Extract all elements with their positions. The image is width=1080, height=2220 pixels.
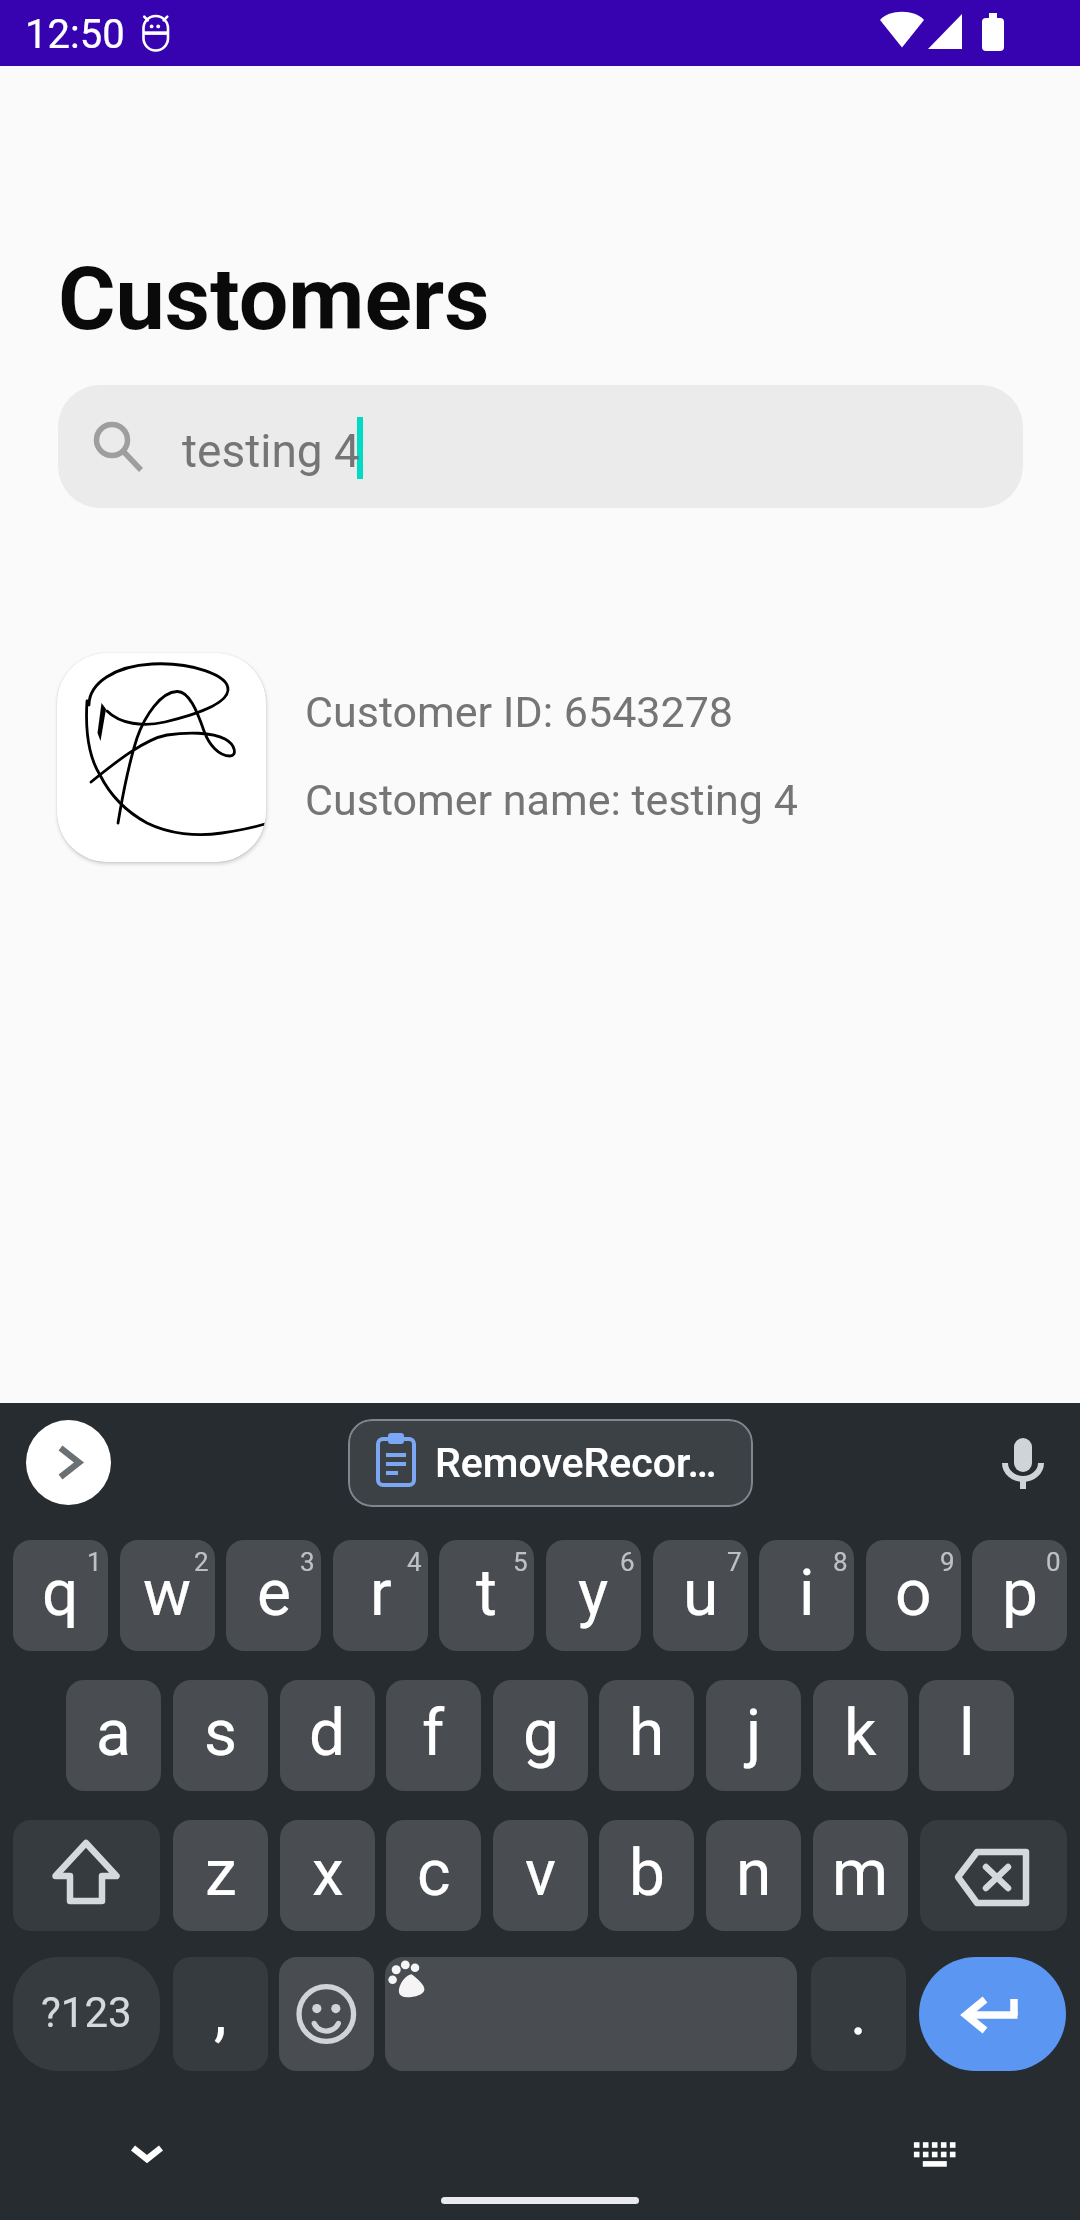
- staticText: 7: [727, 1547, 742, 1577]
- staticText: RemoveRecor…: [435, 1439, 717, 1487]
- button[interactable]: Switch keyboard: [890, 2121, 980, 2201]
- staticText: Customer name: testing 4: [305, 775, 798, 825]
- staticText: ,: [214, 1975, 227, 2050]
- staticText: Customers: [58, 247, 490, 350]
- staticText: testing 4: [182, 424, 360, 478]
- button[interactable]: j: [706, 1680, 801, 1791]
- button[interactable]: a: [66, 1680, 161, 1791]
- button[interactable]: g: [493, 1680, 588, 1791]
- staticText: e: [257, 1556, 291, 1631]
- staticText: 5: [513, 1547, 528, 1577]
- staticText: c: [417, 1836, 451, 1911]
- button[interactable]: b: [599, 1820, 694, 1931]
- staticText: 1: [87, 1547, 102, 1577]
- staticText: f: [422, 1696, 445, 1771]
- button[interactable]: p: [972, 1540, 1067, 1651]
- button[interactable]: m: [813, 1820, 908, 1931]
- button[interactable]: x: [280, 1820, 375, 1931]
- button[interactable]: v: [493, 1820, 588, 1931]
- staticText: y: [578, 1556, 609, 1631]
- button[interactable]: Voice input: [978, 1420, 1068, 1505]
- staticText: n: [736, 1836, 772, 1911]
- staticText: ?123: [41, 1988, 132, 2037]
- staticText: g: [523, 1696, 559, 1771]
- button[interactable]: Shift: [13, 1820, 160, 1931]
- staticText: 3: [300, 1547, 315, 1577]
- button[interactable]: RemoveRecor…: [348, 1419, 753, 1507]
- button[interactable]: ,: [173, 1957, 268, 2071]
- staticText: v: [525, 1836, 556, 1911]
- staticText: k: [844, 1696, 877, 1771]
- button[interactable]: w: [120, 1540, 215, 1651]
- button[interactable]: t: [439, 1540, 534, 1651]
- staticText: 2: [194, 1547, 209, 1577]
- staticText: t: [476, 1556, 497, 1631]
- staticText: 4: [407, 1547, 422, 1577]
- button[interactable]: o: [866, 1540, 961, 1651]
- staticText: m: [832, 1836, 889, 1911]
- staticText: a: [96, 1696, 131, 1771]
- staticText: z: [205, 1836, 237, 1911]
- staticText: h: [629, 1696, 665, 1771]
- staticText: 9: [940, 1547, 955, 1577]
- staticText: 12:50: [25, 11, 125, 58]
- button[interactable]: d: [280, 1680, 375, 1791]
- button[interactable]: f: [386, 1680, 481, 1791]
- button[interactable]: testing 4: [58, 385, 1023, 508]
- button[interactable]: Space: [385, 1957, 797, 2071]
- button[interactable]: Enter: [919, 1957, 1066, 2071]
- button[interactable]: Backspace: [920, 1820, 1067, 1931]
- staticText: b: [629, 1836, 665, 1911]
- staticText: u: [683, 1556, 719, 1631]
- button[interactable]: e: [226, 1540, 321, 1651]
- staticText: q: [42, 1556, 79, 1631]
- staticText: Customer ID: 6543278: [305, 687, 733, 737]
- button[interactable]: h: [599, 1680, 694, 1791]
- button[interactable]: .: [811, 1957, 906, 2071]
- button[interactable]: z: [173, 1820, 268, 1931]
- button[interactable]: i: [759, 1540, 854, 1651]
- button[interactable]: Emoji: [279, 1957, 374, 2071]
- staticText: x: [312, 1836, 344, 1911]
- button[interactable]: Hide keyboard: [100, 2121, 195, 2201]
- staticText: o: [895, 1556, 932, 1631]
- button[interactable]: c: [386, 1820, 481, 1931]
- button[interactable]: k: [813, 1680, 908, 1791]
- staticText: s: [204, 1696, 238, 1771]
- button[interactable]: s: [173, 1680, 268, 1791]
- staticText: 8: [833, 1547, 848, 1577]
- staticText: 6: [620, 1547, 635, 1577]
- staticText: l: [959, 1696, 975, 1771]
- staticText: .: [850, 1975, 867, 2050]
- button[interactable]: l: [919, 1680, 1014, 1791]
- button[interactable]: ?123: [13, 1957, 160, 2071]
- staticText: r: [370, 1556, 392, 1631]
- button[interactable]: r: [333, 1540, 428, 1651]
- button[interactable]: Customer ID: 6543278: [40, 640, 1040, 876]
- staticText: i: [799, 1556, 815, 1631]
- staticText: w: [143, 1556, 192, 1631]
- button[interactable]: y: [546, 1540, 641, 1651]
- button[interactable]: u: [653, 1540, 748, 1651]
- button[interactable]: q: [13, 1540, 108, 1651]
- button[interactable]: Expand toolbar: [26, 1420, 111, 1505]
- staticText: j: [746, 1696, 762, 1771]
- staticText: p: [1002, 1556, 1038, 1631]
- staticText: 0: [1046, 1547, 1061, 1577]
- staticText: d: [309, 1696, 346, 1771]
- button[interactable]: n: [706, 1820, 801, 1931]
